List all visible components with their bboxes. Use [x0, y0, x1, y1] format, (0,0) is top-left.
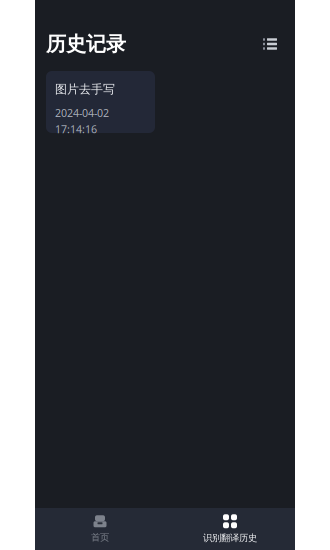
button[interactable]: 图片去手写: [46, 71, 155, 133]
button[interactable]: 首页: [35, 509, 165, 549]
button[interactable]: 菜单: [256, 30, 284, 58]
staticText: 图片去手写: [55, 82, 115, 97]
staticText: 2024-04-02: [55, 106, 109, 120]
staticText: 17:14:16: [55, 122, 97, 136]
staticText: 识别翻译历史: [203, 532, 257, 544]
button[interactable]: 识别翻译历史: [165, 508, 295, 550]
staticText: 历史记录: [46, 32, 126, 56]
staticText: 首页: [91, 532, 109, 543]
